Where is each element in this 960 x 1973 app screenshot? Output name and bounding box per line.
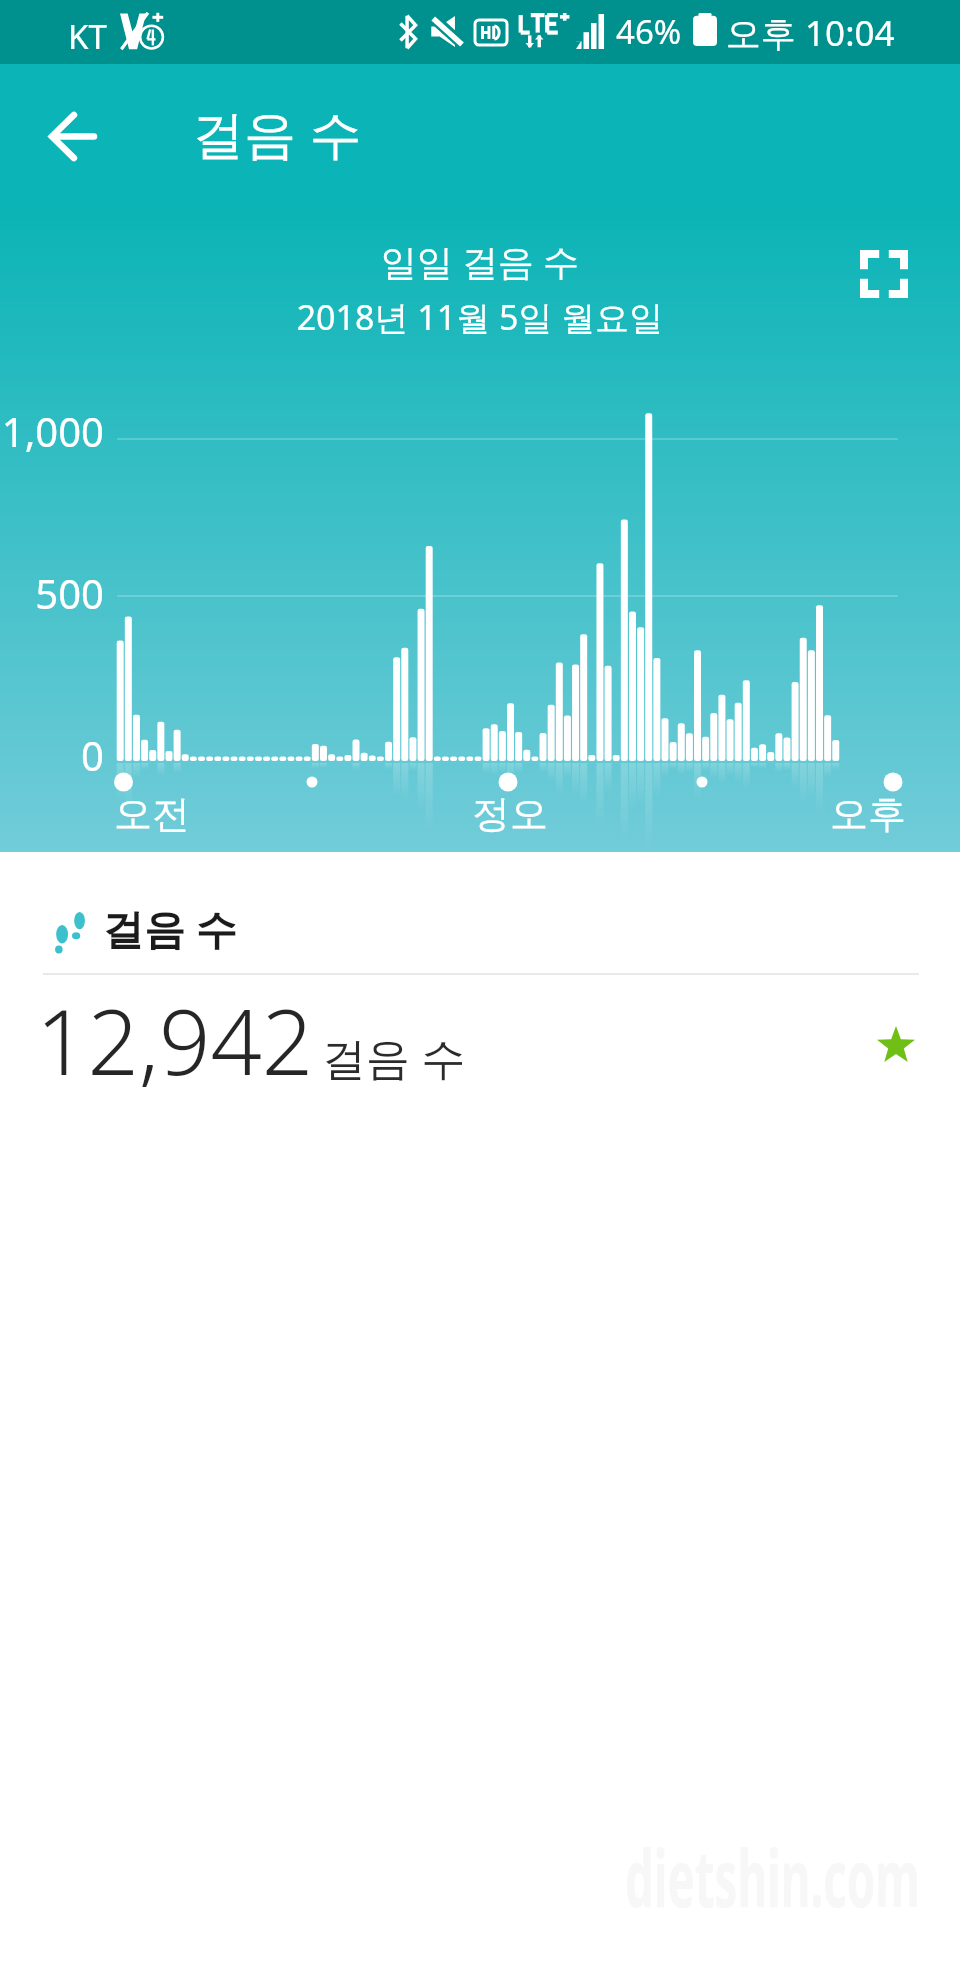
staticText: 걸음 수	[103, 900, 237, 956]
button[interactable]: Favorite	[866, 1014, 926, 1074]
staticText: 1,000	[0, 404, 104, 458]
staticText: 2018년 11월 5일 월요일	[0, 294, 960, 340]
staticText: 46%	[616, 9, 682, 54]
staticText: 정오	[410, 790, 610, 838]
button[interactable]: Back	[25, 88, 121, 184]
staticText: 오전	[52, 790, 252, 838]
staticText: 오후	[768, 790, 960, 838]
button[interactable]: Full screen	[846, 236, 922, 312]
staticText: 걸음 수	[192, 97, 362, 168]
staticText: 500	[0, 566, 104, 620]
button[interactable]: 걸음 수	[40, 890, 280, 958]
staticText: 걸음 수	[322, 1027, 466, 1087]
staticText: KT	[68, 14, 107, 59]
staticText: 일일 걸음 수	[0, 237, 960, 286]
staticText: 0	[0, 728, 104, 782]
staticText: 12,942	[36, 979, 314, 1102]
staticText: dietshin.com	[625, 1822, 920, 1930]
staticText: 오후 10:04	[726, 9, 895, 57]
